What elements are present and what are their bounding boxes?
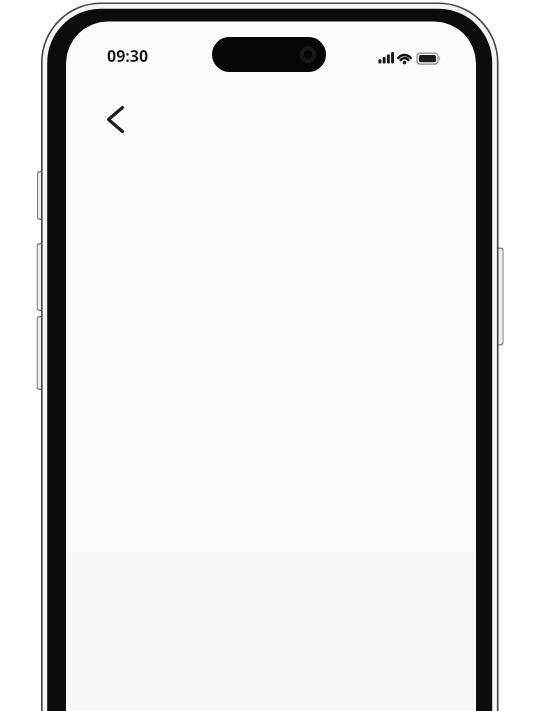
button[interactable] (96, 98, 136, 140)
staticText: 09:30 (107, 45, 149, 67)
